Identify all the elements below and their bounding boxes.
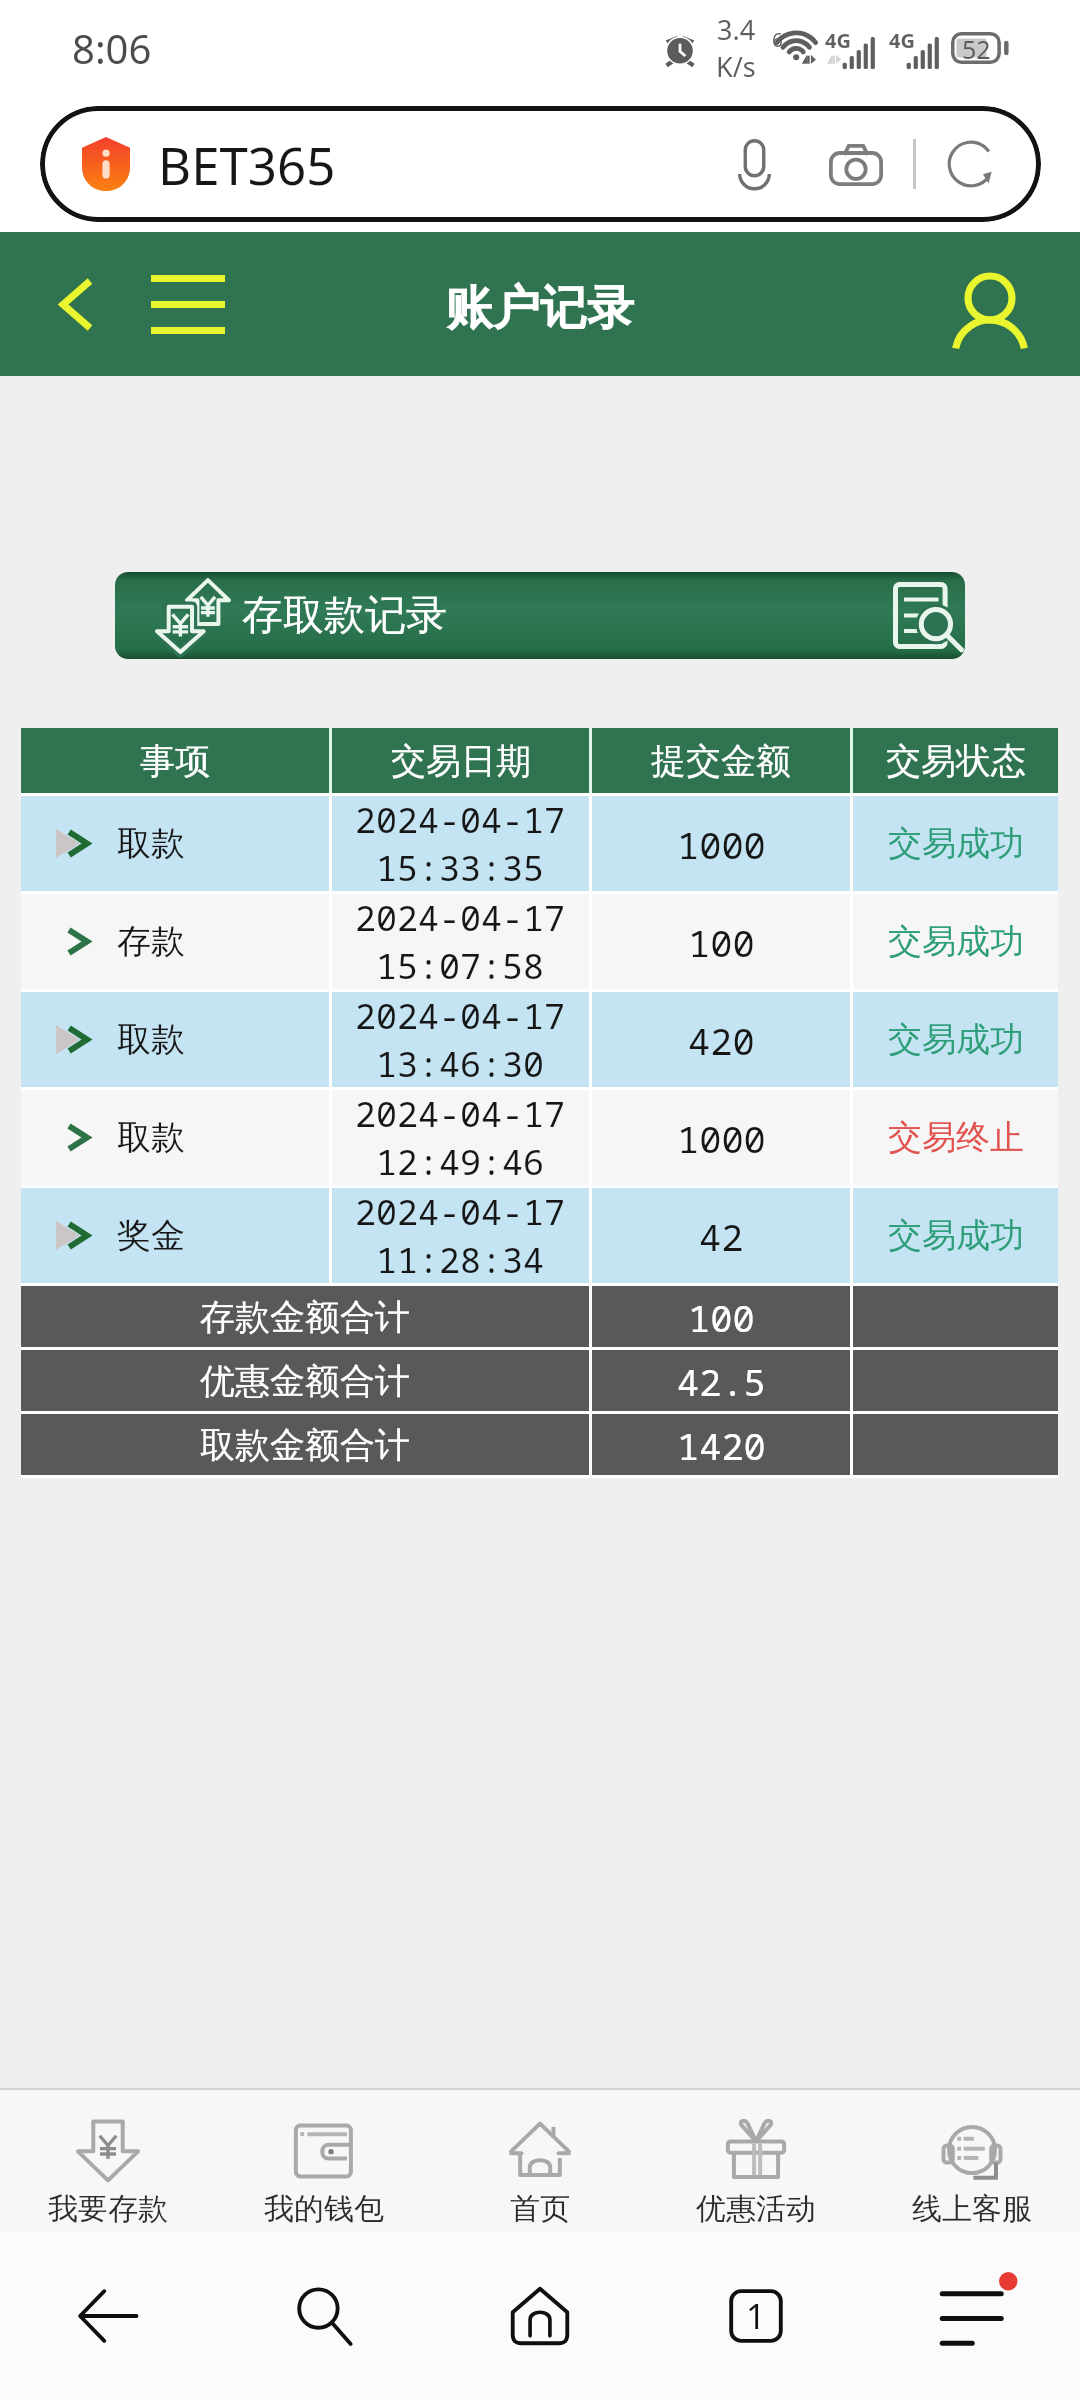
staticText: 4G — [825, 27, 851, 54]
staticText: 交易成功 — [888, 1214, 1024, 1257]
staticText: 2024-04-17 — [355, 796, 566, 844]
staticText: 账户记录 — [446, 279, 634, 338]
staticText: 存款金额合计 — [200, 1295, 410, 1339]
button[interactable]: Back — [0, 2232, 216, 2400]
staticText: 42 — [699, 1211, 744, 1261]
button[interactable]: Menu — [138, 259, 238, 349]
staticText: 取款金额合计 — [200, 1423, 410, 1467]
staticText: BET365 — [158, 130, 336, 199]
staticText: 提交金额 — [651, 739, 791, 783]
button[interactable]: Home — [432, 2232, 648, 2400]
staticText: 15:07:58 — [376, 942, 545, 989]
staticText: 8:06 — [72, 21, 152, 75]
staticText: 52 — [962, 32, 991, 64]
button[interactable]: BET365 — [40, 106, 1041, 222]
staticText: 12:49:46 — [376, 1138, 545, 1185]
staticText: 存款 — [117, 920, 185, 963]
staticText: 6 — [772, 27, 783, 53]
button[interactable]: Search — [216, 2232, 432, 2400]
staticText: 交易成功 — [888, 822, 1024, 865]
staticText: 2024-04-17 — [355, 1090, 566, 1138]
staticText: 优惠金额合计 — [200, 1359, 410, 1403]
staticText: 取款 — [117, 1116, 185, 1159]
button[interactable]: Tabs — [648, 2232, 864, 2400]
button[interactable]: 优惠活动 — [648, 2090, 864, 2232]
button[interactable]: 首页 — [432, 2090, 648, 2232]
button[interactable]: 我的钱包 — [216, 2090, 432, 2232]
button[interactable]: Back — [36, 259, 116, 349]
staticText: 首页 — [510, 2190, 570, 2228]
staticText: 我的钱包 — [264, 2190, 384, 2228]
staticText: 2024-04-17 — [355, 992, 566, 1040]
staticText: 取款 — [117, 1018, 185, 1061]
staticText: 1000 — [677, 1113, 766, 1163]
staticText: 2024-04-17 — [355, 1188, 566, 1236]
button[interactable]: 存取款记录 — [115, 572, 965, 659]
staticText: 3.4 — [717, 11, 756, 48]
staticText: 优惠活动 — [696, 2190, 816, 2228]
staticText: 奖金 — [117, 1214, 185, 1257]
staticText: 420 — [688, 1015, 755, 1065]
button[interactable]: 我要存款 — [0, 2090, 216, 2232]
staticText: 11:28:34 — [376, 1236, 545, 1283]
staticText: 交易日期 — [391, 739, 531, 783]
button[interactable]: Account — [940, 249, 1040, 359]
staticText: 100 — [688, 917, 755, 967]
staticText: 15:33:35 — [376, 844, 545, 891]
staticText: 交易终止 — [888, 1116, 1024, 1159]
staticText: 我要存款 — [48, 2190, 168, 2228]
staticText: 42.5 — [677, 1356, 766, 1406]
button[interactable]: Camera search — [821, 129, 891, 199]
button[interactable]: Refresh — [936, 129, 1006, 199]
staticText: 2024-04-17 — [355, 894, 566, 942]
button[interactable]: Voice search — [719, 129, 789, 199]
staticText: 线上客服 — [912, 2190, 1032, 2228]
button[interactable]: Menu — [864, 2232, 1080, 2400]
staticText: 交易成功 — [888, 1018, 1024, 1061]
staticText: 1000 — [677, 819, 766, 869]
staticText: K/s — [716, 48, 756, 85]
staticText: 4G — [889, 27, 915, 54]
staticText: 存取款记录 — [242, 590, 447, 642]
staticText: 1420 — [677, 1420, 766, 1470]
staticText: 13:46:30 — [376, 1040, 545, 1087]
staticText: 事项 — [140, 739, 210, 783]
staticText: 1 — [746, 2293, 766, 2339]
staticText: 100 — [688, 1292, 755, 1342]
staticText: 取款 — [117, 822, 185, 865]
button[interactable]: 线上客服 — [864, 2090, 1080, 2232]
staticText: 交易状态 — [886, 739, 1026, 783]
staticText: 交易成功 — [888, 920, 1024, 963]
